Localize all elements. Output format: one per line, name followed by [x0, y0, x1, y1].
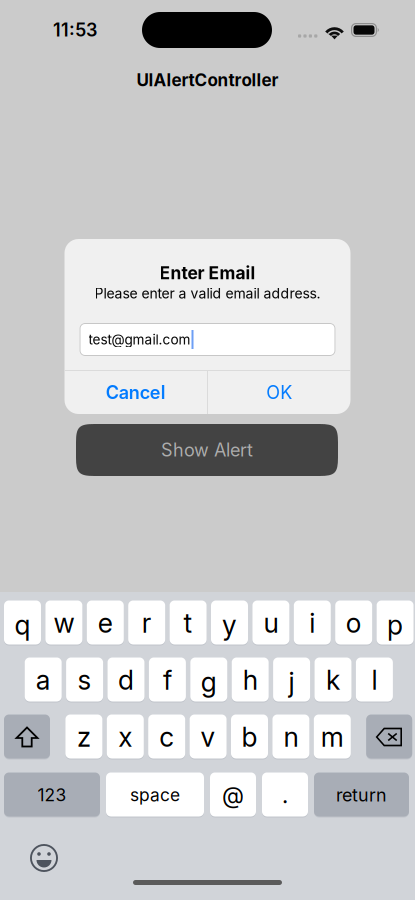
staticText: Cancel	[106, 382, 166, 403]
button[interactable]: b	[231, 715, 268, 759]
staticText: 123	[37, 784, 66, 805]
staticText: f	[163, 664, 172, 696]
staticText: j	[289, 666, 295, 698]
button[interactable]: g	[190, 658, 227, 702]
staticText: @	[222, 781, 244, 809]
staticText: p	[387, 609, 403, 641]
button[interactable]: t	[170, 601, 207, 645]
button[interactable]: p	[377, 601, 414, 645]
button[interactable]: h	[232, 658, 269, 702]
button[interactable]: o	[335, 601, 372, 645]
staticText: h	[243, 664, 258, 696]
button[interactable]: m	[314, 715, 351, 759]
button[interactable]: u	[252, 601, 289, 645]
button[interactable]: space	[106, 773, 204, 817]
button[interactable]: i	[294, 601, 331, 645]
button[interactable]: z	[65, 715, 102, 759]
button[interactable]: l	[356, 658, 393, 702]
staticText: .	[282, 781, 288, 809]
button[interactable]: return	[314, 773, 409, 817]
button[interactable]: y	[211, 601, 248, 645]
staticText: y	[222, 609, 237, 641]
button[interactable]: e	[87, 601, 124, 645]
staticText: OK	[266, 382, 292, 403]
button[interactable]: v	[190, 715, 227, 759]
staticText: z	[77, 721, 91, 753]
button[interactable]: r	[128, 601, 165, 645]
button[interactable]: x	[107, 715, 144, 759]
button[interactable]: Shift	[4, 715, 50, 759]
button[interactable]: q	[4, 601, 41, 645]
button[interactable]: s	[66, 658, 103, 702]
button[interactable]: n	[272, 715, 309, 759]
staticText: s	[78, 664, 92, 696]
button[interactable]: Delete	[366, 715, 412, 759]
staticText: i	[309, 607, 315, 639]
staticText: n	[283, 721, 298, 753]
staticText: o	[346, 607, 362, 639]
staticText: k	[326, 664, 340, 696]
staticText: g	[201, 666, 217, 698]
button[interactable]: Show Alert	[76, 424, 338, 476]
staticText: x	[118, 721, 132, 753]
staticText: c	[159, 721, 174, 753]
staticText: a	[36, 664, 51, 696]
staticText: e	[98, 607, 113, 639]
button[interactable]: d	[107, 658, 144, 702]
staticText: Show Alert	[161, 439, 253, 461]
staticText: b	[241, 721, 257, 753]
button[interactable]: j	[273, 658, 310, 702]
staticText: w	[53, 607, 74, 639]
button[interactable]: @	[210, 773, 256, 817]
staticText: test@gmail.com	[88, 331, 190, 348]
staticText: t	[184, 607, 193, 639]
staticText: return	[336, 784, 387, 806]
staticText: l	[371, 664, 377, 696]
button[interactable]: f	[149, 658, 186, 702]
button[interactable]: a	[25, 658, 62, 702]
staticText: r	[142, 607, 152, 639]
staticText: v	[201, 721, 216, 753]
button[interactable]: .	[262, 773, 308, 817]
button[interactable]: k	[314, 658, 351, 702]
staticText: u	[263, 607, 278, 639]
button[interactable]: w	[45, 601, 82, 645]
staticText: Enter Email	[159, 262, 255, 283]
button[interactable]: OK	[208, 371, 350, 414]
staticText: 11:53	[53, 19, 97, 41]
staticText: UIAlertController	[136, 70, 278, 90]
button[interactable]: c	[148, 715, 185, 759]
staticText: space	[130, 784, 180, 805]
staticText: m	[321, 721, 344, 753]
staticText: q	[14, 609, 30, 641]
button[interactable]: Emoji keyboard	[29, 843, 59, 873]
staticText: Please enter a valid email address.	[94, 285, 320, 302]
staticText: d	[118, 664, 134, 696]
button[interactable]: Cancel	[64, 371, 207, 414]
button[interactable]: 123	[4, 773, 100, 817]
